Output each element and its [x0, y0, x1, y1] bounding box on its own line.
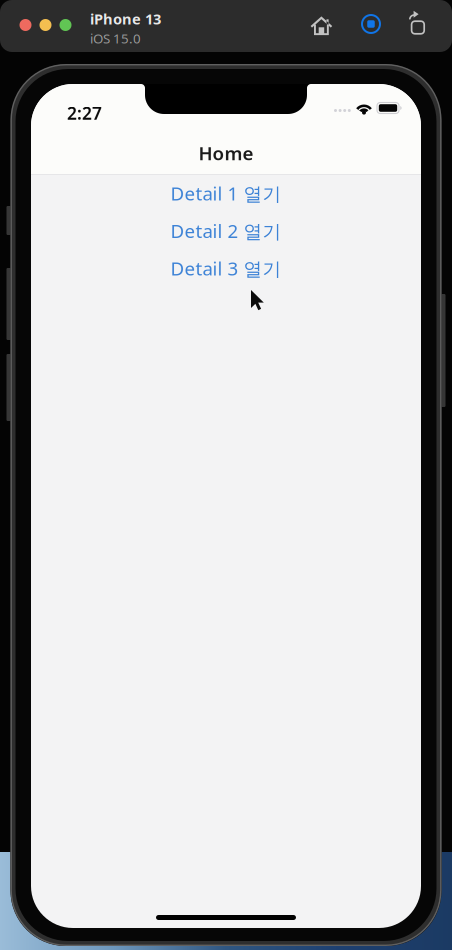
button[interactable]: Detail 1 열기: [31, 174, 421, 212]
staticText: Detail 2 열기: [170, 218, 281, 243]
button[interactable]: Detail 2 열기: [31, 212, 421, 249]
staticText: Home: [198, 141, 253, 165]
button[interactable]: Record screen: [356, 9, 386, 39]
staticText: iPhone 13: [90, 9, 161, 28]
button[interactable]: Home: [307, 9, 337, 39]
staticText: iOS 15.0: [90, 29, 141, 47]
staticText: Detail 1 열기: [170, 181, 281, 206]
staticText: 2:27: [67, 101, 102, 124]
button[interactable]: Rotate: [403, 9, 433, 39]
button[interactable]: Detail 3 열기: [31, 249, 421, 287]
staticText: Detail 3 열기: [170, 256, 281, 281]
